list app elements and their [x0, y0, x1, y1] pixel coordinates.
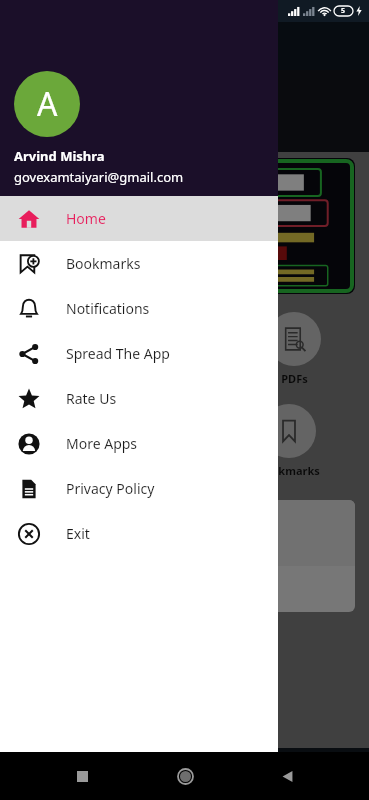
staticText: Bookmarks	[257, 463, 320, 478]
staticText: Spread The App	[66, 344, 170, 363]
button[interactable]: PDFs	[267, 312, 321, 386]
staticText: Arvind Mishra	[14, 147, 105, 165]
button[interactable]: Recent apps	[62, 756, 102, 796]
button[interactable]: Notifications	[0, 286, 278, 331]
button[interactable]: Bookmarks	[257, 404, 320, 478]
button[interactable]	[14, 158, 355, 294]
staticText: 5	[341, 6, 346, 16]
staticText: कैसे आप Failure को Avoid	[18, 124, 149, 140]
staticText: More Apps	[66, 434, 138, 453]
button[interactable]: Bookmarks	[0, 241, 278, 286]
button[interactable]: Back	[267, 756, 307, 796]
staticText: Exit	[66, 524, 90, 543]
button[interactable]: Study Notes	[49, 312, 116, 386]
staticText: govexamtaiyari@gmail.com	[14, 168, 184, 186]
button[interactable]: Home	[165, 756, 205, 796]
staticText: Privacy Policy	[66, 479, 155, 498]
button[interactable]: इतिहास विषय में	[14, 500, 355, 612]
button[interactable]: Privacy Policy	[0, 466, 278, 511]
staticText: PDFs	[281, 371, 308, 386]
other: Notifications	[172, 761, 198, 787]
button[interactable]: Home	[0, 196, 278, 241]
staticText: Notifications	[66, 299, 150, 318]
button[interactable]: Tricks	[50, 404, 104, 478]
button[interactable]: More Apps	[0, 421, 278, 466]
staticText: A	[37, 82, 58, 126]
button[interactable]: Spread The App	[0, 331, 278, 376]
button[interactable]: Quizzes	[164, 312, 218, 386]
button[interactable]: A	[14, 71, 80, 137]
staticText: Rate Us	[66, 389, 117, 408]
button[interactable]: Exit	[0, 511, 278, 556]
staticText: Bookmarks	[66, 254, 141, 273]
staticText: Home	[66, 209, 106, 228]
button[interactable]: Rate Us	[0, 376, 278, 421]
